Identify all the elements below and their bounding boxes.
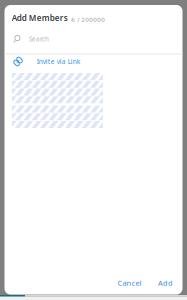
button[interactable]: Add	[153, 273, 178, 293]
staticText: 6 / 200000	[71, 15, 105, 24]
staticText: Invite via Link	[37, 57, 81, 66]
staticText: Search	[29, 35, 49, 43]
staticText: Add	[158, 278, 173, 288]
button[interactable]: Invite via Link	[4, 52, 182, 71]
staticText: Add Members	[12, 12, 68, 23]
button[interactable]: Cancel	[112, 273, 146, 293]
button[interactable]: Search	[4, 30, 182, 48]
staticText: Cancel	[117, 278, 141, 288]
